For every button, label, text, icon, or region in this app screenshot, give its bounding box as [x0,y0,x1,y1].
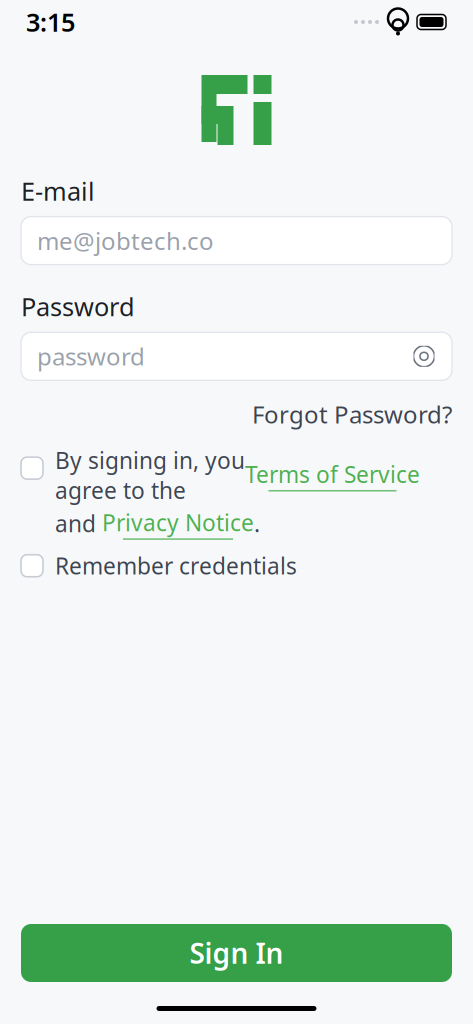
staticText: and [55,508,102,539]
button[interactable]: Forgot Password? [252,398,452,430]
button[interactable]: Agree to Terms of Service and Privacy No… [21,445,43,479]
staticText: Password [21,290,135,323]
button[interactable]: Show password [402,348,436,364]
button[interactable]: Terms of Service [245,459,420,491]
staticText: Remember credentials [55,551,297,581]
staticText: . [254,508,260,539]
staticText: me@jobtech.co [37,225,214,257]
staticText: 3:15 [26,5,75,39]
staticText: Terms of Service [245,459,420,489]
staticText: Sign In [189,934,283,972]
staticText: E-mail [21,174,95,208]
staticText: password [37,340,145,372]
button[interactable]: Privacy Notice [102,507,254,540]
staticText: By signing in, you agree to the [55,445,245,505]
button[interactable]: Sign In [21,924,452,982]
button[interactable]: Remember credentials [21,551,452,581]
staticText: Forgot Password? [252,398,452,430]
staticText: Privacy Notice [102,507,254,537]
